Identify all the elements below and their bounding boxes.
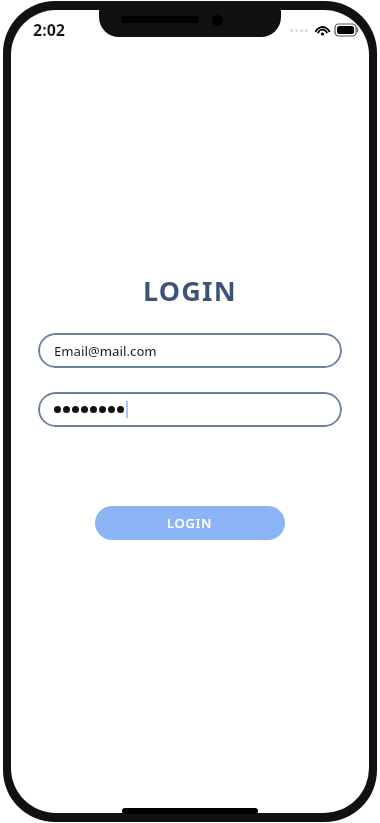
staticText: LOGIN	[143, 272, 237, 309]
button[interactable]	[38, 392, 342, 427]
staticText: 2:02	[33, 19, 65, 41]
staticText: Email@mail.com	[54, 342, 157, 360]
staticText: LOGIN	[167, 514, 213, 532]
button[interactable]: Email@mail.com	[38, 333, 342, 368]
button[interactable]: LOGIN	[95, 506, 285, 540]
